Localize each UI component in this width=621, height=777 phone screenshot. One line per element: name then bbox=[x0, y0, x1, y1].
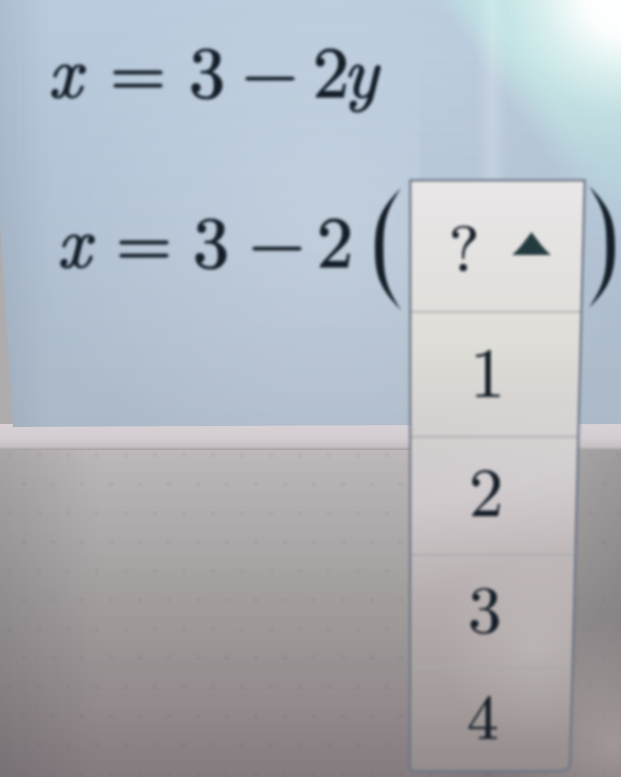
staticText: 2 bbox=[469, 439, 504, 536]
staticText: 3 bbox=[193, 186, 230, 288]
staticText: 4 bbox=[467, 668, 499, 757]
staticText: 2 bbox=[317, 186, 354, 288]
button[interactable] bbox=[409, 669, 586, 771]
staticText: ? bbox=[449, 199, 480, 290]
staticText: 2 bbox=[313, 16, 350, 118]
staticText: = bbox=[110, 16, 167, 118]
button[interactable] bbox=[409, 556, 586, 667]
staticText: − bbox=[249, 186, 306, 288]
button[interactable]: Choose a value bbox=[409, 179, 586, 311]
staticText: − bbox=[242, 16, 299, 118]
staticText: ? bbox=[449, 199, 480, 290]
staticText: 2 bbox=[469, 439, 504, 536]
staticText: = bbox=[116, 186, 173, 288]
staticText: 1 bbox=[470, 318, 505, 417]
button[interactable] bbox=[409, 313, 586, 436]
staticText: 4 bbox=[467, 668, 499, 757]
staticText: 2 bbox=[313, 16, 350, 118]
staticText: = bbox=[110, 16, 167, 118]
staticText: y bbox=[343, 16, 378, 118]
staticText: 1 bbox=[470, 318, 505, 417]
staticText: x bbox=[48, 16, 82, 118]
staticText: 3 bbox=[468, 557, 502, 652]
staticText: − bbox=[249, 186, 306, 288]
staticText: 2 bbox=[317, 186, 354, 288]
staticText: 3 bbox=[193, 186, 230, 288]
button[interactable] bbox=[409, 438, 586, 554]
staticText: 3 bbox=[468, 557, 502, 652]
staticText: x bbox=[48, 16, 82, 118]
staticText: = bbox=[116, 186, 173, 288]
staticText: 3 bbox=[189, 16, 226, 118]
staticText: 3 bbox=[189, 16, 226, 118]
staticText: x bbox=[57, 186, 91, 288]
staticText: y bbox=[343, 16, 378, 118]
staticText: − bbox=[242, 16, 299, 118]
staticText: x bbox=[57, 186, 91, 288]
